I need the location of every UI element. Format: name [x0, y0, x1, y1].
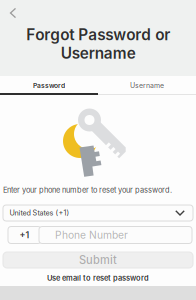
button[interactable]: United States (+1)	[3, 205, 193, 221]
staticText: +1	[19, 230, 29, 240]
button[interactable]: Use email to reset password	[3, 272, 193, 284]
button[interactable]: +1	[8, 226, 41, 243]
button[interactable]: Submit	[3, 252, 193, 268]
button[interactable]: Username	[98, 76, 196, 95]
staticText: Username	[130, 81, 164, 90]
staticText: Enter your phone number to reset your pa…	[3, 185, 172, 194]
staticText: Forgot Password or Username	[26, 25, 170, 62]
button[interactable]: Password	[0, 76, 98, 95]
button[interactable]: Back	[2, 2, 24, 24]
staticText: Use email to reset password	[47, 273, 149, 282]
staticText: Submit	[79, 253, 117, 267]
staticText: United States (+1)	[9, 209, 69, 217]
staticText: Phone Number	[55, 229, 128, 241]
staticText: Password	[33, 81, 65, 90]
